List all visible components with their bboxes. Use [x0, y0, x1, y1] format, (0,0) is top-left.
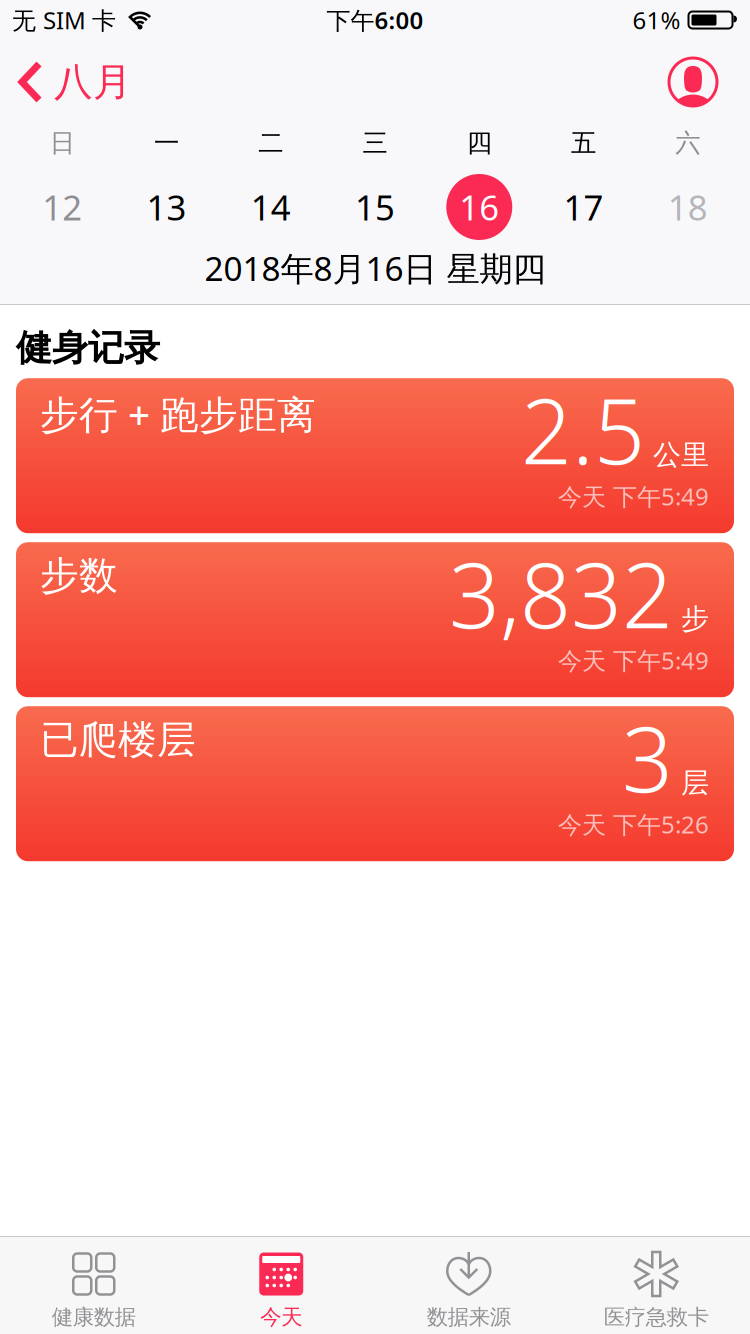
- staticText: 今天 下午5:26: [558, 808, 709, 840]
- staticText: 13: [146, 184, 186, 230]
- staticText: 3: [622, 698, 673, 817]
- button[interactable]: 17: [531, 184, 636, 230]
- button[interactable]: 16: [427, 174, 531, 240]
- staticText: 3,832: [449, 534, 673, 653]
- staticText: 八月: [54, 58, 132, 106]
- button[interactable]: 个人资料: [669, 58, 750, 106]
- staticText: 步: [681, 602, 709, 636]
- staticText: 2018年8月16日 星期四: [204, 246, 545, 290]
- button[interactable]: 12: [10, 184, 114, 230]
- button[interactable]: 医疗急救卡: [562, 1252, 750, 1330]
- staticText: 公里: [653, 438, 709, 472]
- staticText: 14: [251, 184, 291, 230]
- staticText: 一: [154, 127, 179, 158]
- button[interactable]: 数据来源: [375, 1252, 562, 1330]
- button[interactable]: 14: [219, 184, 323, 230]
- staticText: 健康数据: [52, 1304, 136, 1330]
- button[interactable]: 今天: [187, 1252, 375, 1330]
- staticText: 今天 下午5:49: [558, 480, 709, 512]
- staticText: 无 SIM 卡: [12, 4, 116, 36]
- staticText: 三: [362, 127, 387, 158]
- staticText: 四: [467, 127, 492, 158]
- staticText: 17: [564, 184, 604, 230]
- staticText: 16: [459, 184, 499, 230]
- staticText: 今天: [260, 1304, 302, 1330]
- button[interactable]: 步行 + 跑步距离: [16, 378, 734, 533]
- button[interactable]: 已爬楼层: [16, 706, 734, 861]
- button[interactable]: 返回 八月: [0, 58, 132, 106]
- staticText: 12: [42, 184, 82, 230]
- staticText: 层: [681, 766, 709, 800]
- staticText: 15: [355, 184, 395, 230]
- staticText: 步行 + 跑步距离: [40, 388, 316, 439]
- button[interactable]: 15: [323, 184, 427, 230]
- staticText: 二: [258, 127, 283, 158]
- staticText: 61%: [632, 4, 680, 36]
- button[interactable]: 步数: [16, 542, 734, 697]
- staticText: 数据来源: [427, 1304, 511, 1330]
- staticText: 2.5: [521, 370, 645, 489]
- staticText: 健身记录: [16, 326, 160, 370]
- staticText: 步数: [40, 552, 118, 600]
- button[interactable]: 18: [636, 184, 740, 230]
- staticText: 下午6:00: [326, 4, 423, 36]
- staticText: 六: [675, 127, 700, 158]
- staticText: 已爬楼层: [40, 716, 196, 764]
- staticText: 五: [571, 127, 596, 158]
- staticText: 18: [668, 184, 708, 230]
- staticText: 今天 下午5:49: [558, 644, 709, 676]
- button[interactable]: 13: [114, 184, 219, 230]
- staticText: 医疗急救卡: [604, 1304, 709, 1330]
- button[interactable]: 健康数据: [0, 1252, 187, 1330]
- staticText: 日: [50, 127, 75, 158]
